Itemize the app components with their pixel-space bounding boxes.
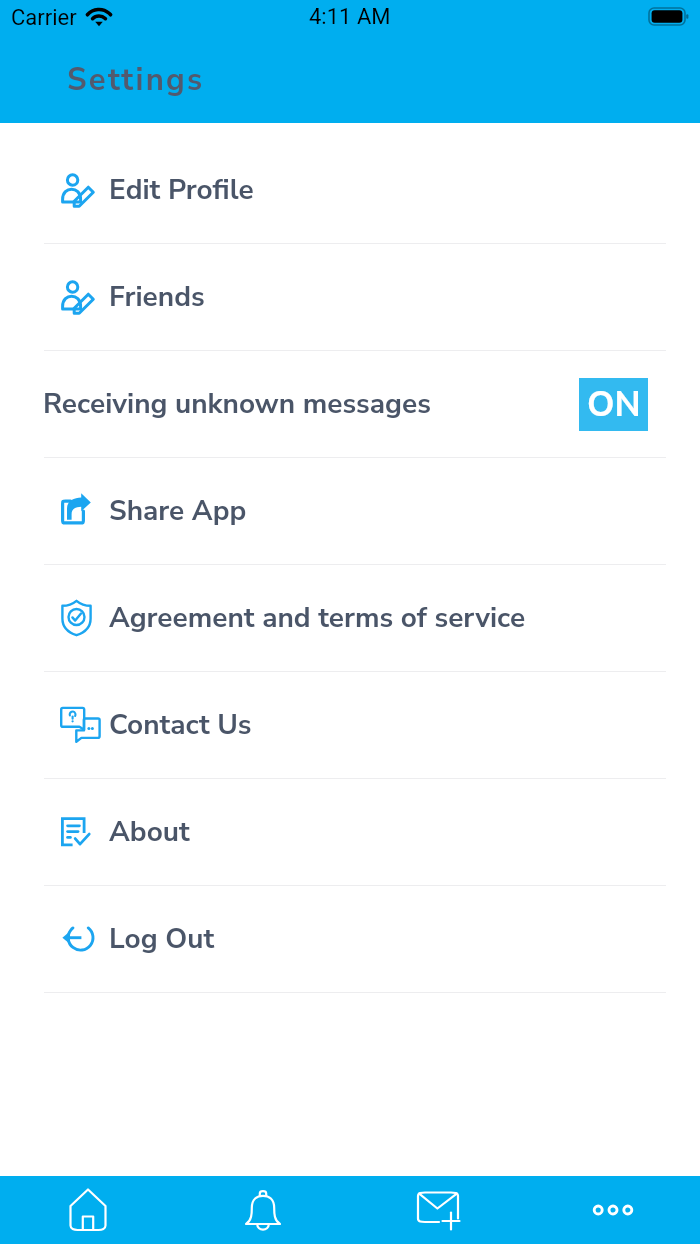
button[interactable]: Receiving unknown messages [0, 351, 700, 457]
button[interactable]: Friends [0, 244, 700, 350]
staticText: Receiving unknown messages [43, 385, 431, 423]
staticText: Friends [109, 278, 205, 316]
staticText: Contact Us [109, 706, 252, 744]
button[interactable]: ON [579, 378, 648, 431]
staticText: Carrier [11, 5, 77, 31]
button[interactable]: New message [350, 1176, 525, 1244]
staticText: Settings [67, 59, 205, 101]
button[interactable]: Agreement and terms of service [0, 565, 700, 671]
staticText: 4:11 AM [309, 4, 391, 30]
staticText: ON [587, 381, 641, 429]
button[interactable]: More options [525, 1176, 700, 1244]
staticText: Log Out [109, 920, 215, 958]
button[interactable]: Edit Profile [0, 136, 700, 243]
button[interactable]: Share App [0, 458, 700, 564]
button[interactable]: Log Out [0, 886, 700, 992]
staticText: Share App [109, 492, 247, 530]
staticText: Agreement and terms of service [109, 599, 526, 637]
button[interactable]: About [0, 779, 700, 885]
button[interactable]: Home [0, 1176, 175, 1244]
button[interactable]: Notifications [175, 1176, 350, 1244]
staticText: About [109, 813, 190, 851]
staticText: Edit Profile [109, 171, 254, 209]
button[interactable]: Contact Us [0, 672, 700, 778]
